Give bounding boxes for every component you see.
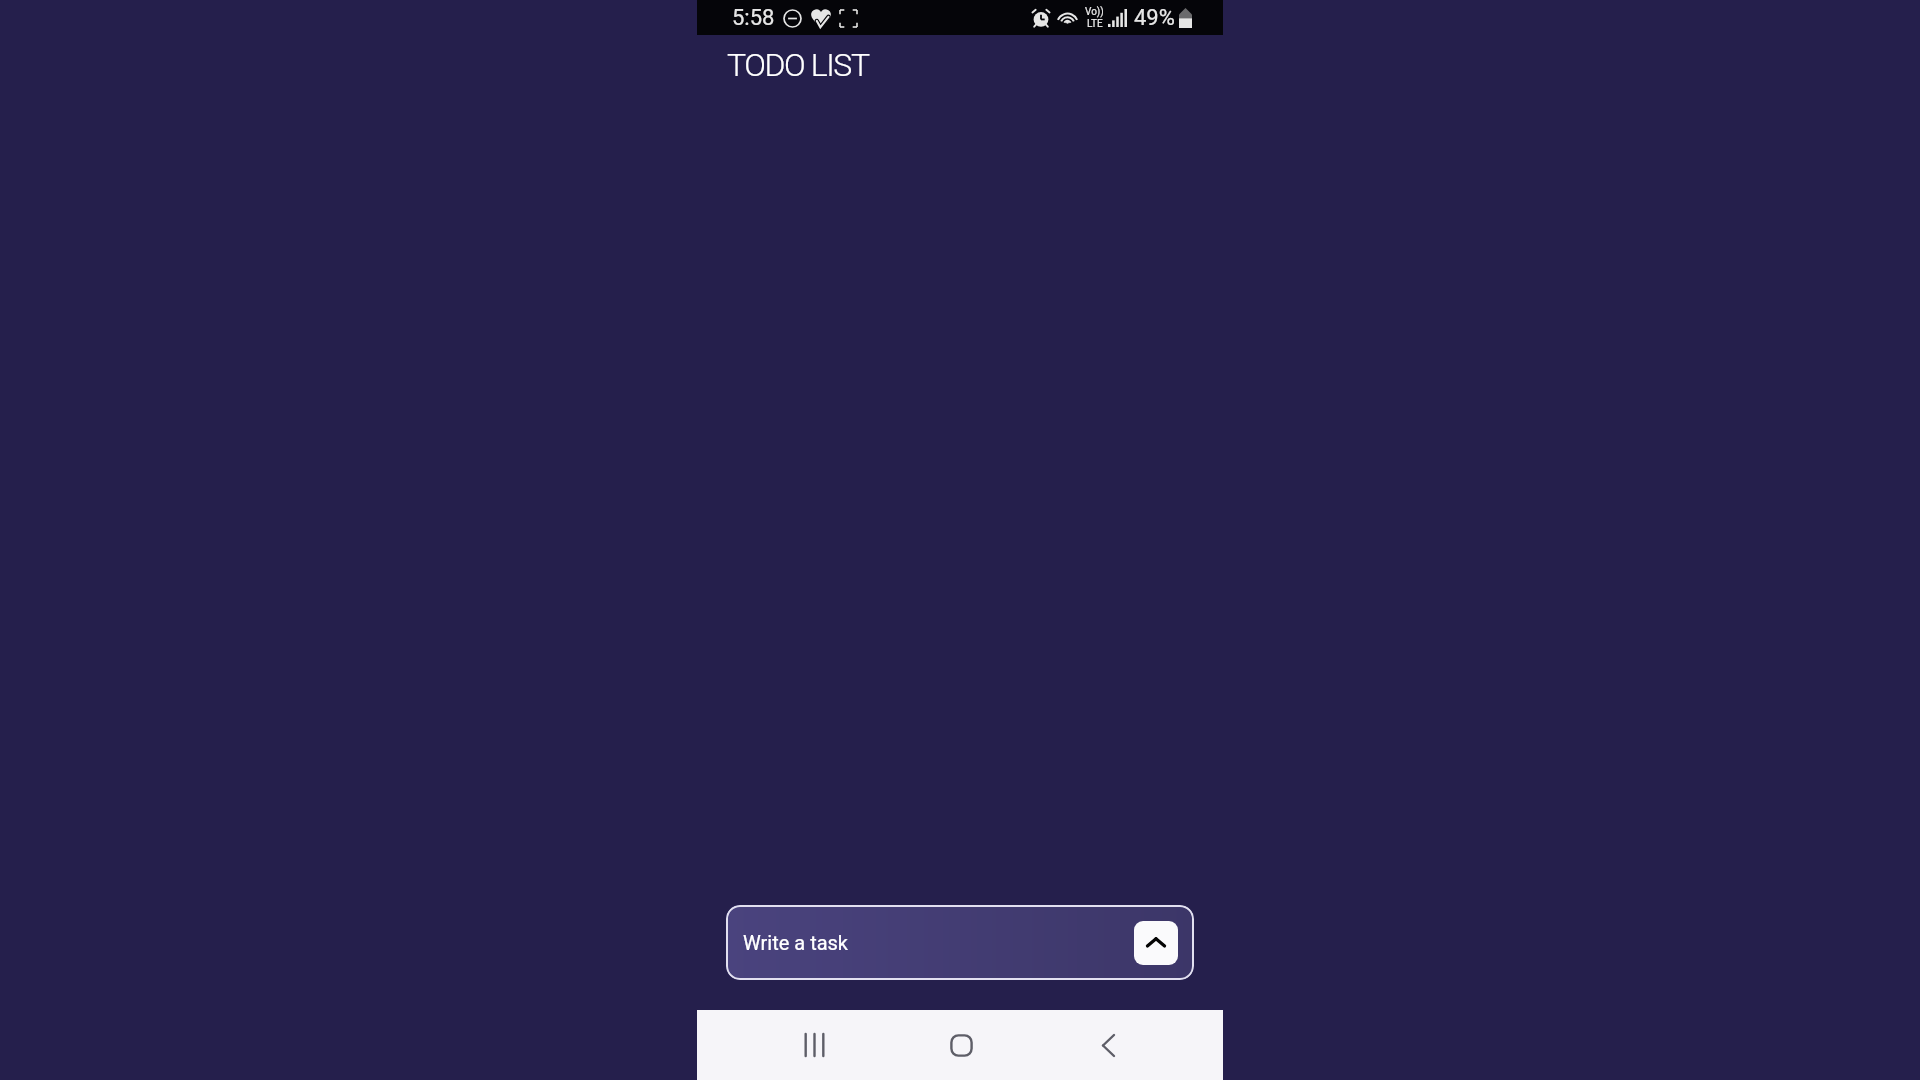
button[interactable]: Add task bbox=[1134, 921, 1178, 965]
staticText: Write a task bbox=[743, 931, 849, 954]
staticText: 5:58 bbox=[732, 5, 775, 31]
button[interactable]: Write a task bbox=[726, 905, 1194, 980]
button[interactable]: Recent apps bbox=[782, 1013, 846, 1077]
button[interactable]: Back bbox=[1076, 1013, 1140, 1077]
staticText: 49% bbox=[1134, 5, 1175, 31]
button[interactable]: Home bbox=[929, 1013, 993, 1077]
staticText: Vo)) bbox=[1085, 6, 1104, 18]
staticText: TODO LIST bbox=[727, 46, 869, 84]
staticText: LTE bbox=[1087, 18, 1103, 30]
